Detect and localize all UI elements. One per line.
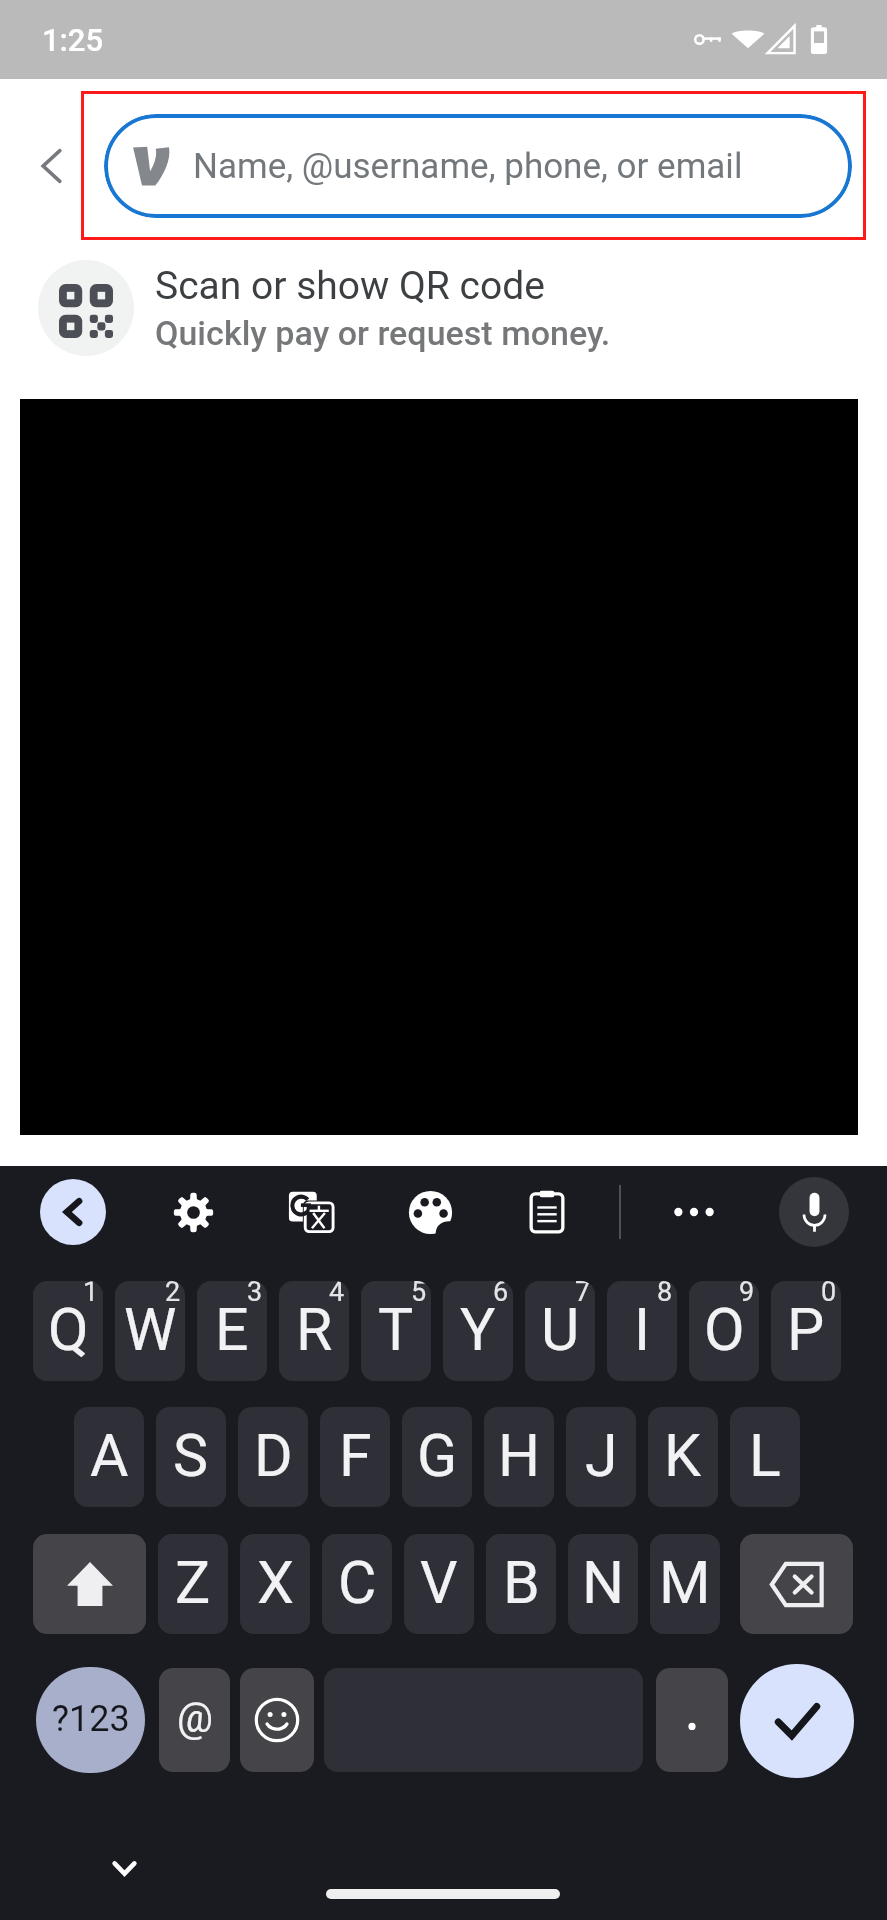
button[interactable]: Clipboard <box>517 1182 577 1242</box>
staticText: 6 <box>493 1281 509 1308</box>
staticText: V <box>420 1548 458 1617</box>
staticText: Q <box>48 1295 89 1364</box>
button[interactable]: M <box>650 1534 720 1634</box>
button[interactable]: More options <box>664 1182 724 1242</box>
staticText: N <box>582 1548 625 1617</box>
staticText: 7 <box>575 1281 591 1308</box>
button[interactable]: Y <box>443 1281 513 1381</box>
button[interactable]: Voice input <box>779 1177 849 1247</box>
staticText: 8 <box>657 1281 673 1308</box>
button[interactable]: Back <box>17 132 85 200</box>
button[interactable]: Hide keyboard <box>98 1842 150 1894</box>
staticText: M <box>659 1548 711 1617</box>
button[interactable]: J <box>566 1407 636 1507</box>
button[interactable]: G <box>402 1407 472 1507</box>
staticText: B <box>503 1548 540 1617</box>
button[interactable]: E <box>197 1281 267 1381</box>
staticText: Y <box>460 1295 496 1364</box>
button[interactable]: D <box>238 1407 308 1507</box>
button[interactable]: K <box>648 1407 718 1507</box>
staticText: T <box>378 1295 414 1364</box>
staticText: C <box>338 1548 377 1617</box>
button[interactable]: Done <box>740 1664 854 1778</box>
staticText: 5 <box>411 1281 427 1308</box>
staticText: Quickly pay or request money. <box>155 313 611 353</box>
staticText: H <box>498 1421 541 1490</box>
staticText: E <box>215 1295 249 1364</box>
button[interactable]: R <box>279 1281 349 1381</box>
staticText: F <box>339 1421 372 1490</box>
button[interactable]: V <box>404 1534 474 1634</box>
staticText: ?123 <box>52 1698 130 1740</box>
staticText: I <box>634 1295 651 1364</box>
staticText: 9 <box>739 1281 755 1308</box>
button[interactable]: Q <box>33 1281 103 1381</box>
button[interactable]: Settings <box>163 1182 223 1242</box>
button[interactable]: Scan or show QR code <box>0 246 887 370</box>
button[interactable]: I <box>607 1281 677 1381</box>
button[interactable]: B <box>486 1534 556 1634</box>
staticText: R <box>296 1295 333 1364</box>
button[interactable]: Theme <box>400 1182 460 1242</box>
button[interactable]: Previous <box>40 1179 106 1245</box>
button[interactable]: Translate <box>281 1182 341 1242</box>
staticText: 3 <box>247 1281 263 1308</box>
button[interactable]: P <box>771 1281 841 1381</box>
staticText: U <box>541 1295 580 1364</box>
button[interactable]: ?123 <box>36 1667 145 1773</box>
button[interactable]: @ <box>159 1668 230 1772</box>
staticText: A <box>90 1421 129 1490</box>
button[interactable]: Shift <box>33 1534 146 1634</box>
button[interactable]: Emoji <box>240 1668 314 1772</box>
staticText: @ <box>177 1695 213 1742</box>
staticText: 0 <box>821 1281 837 1308</box>
button[interactable]: Name, @username, phone, or email <box>104 114 852 218</box>
button[interactable]: C <box>322 1534 392 1634</box>
staticText: O <box>704 1295 745 1364</box>
staticText: D <box>254 1421 293 1490</box>
staticText: G <box>417 1421 458 1490</box>
button[interactable]: X <box>240 1534 310 1634</box>
staticText: K <box>664 1421 702 1490</box>
staticText: P <box>787 1295 825 1364</box>
staticText: Scan or show QR code <box>155 263 545 309</box>
button[interactable]: Delete <box>740 1534 853 1634</box>
button[interactable]: O <box>689 1281 759 1381</box>
staticText: Name, @username, phone, or email <box>193 146 743 187</box>
button[interactable] <box>656 1668 728 1772</box>
button[interactable]: H <box>484 1407 554 1507</box>
button[interactable]: N <box>568 1534 638 1634</box>
button[interactable]: U <box>525 1281 595 1381</box>
button[interactable]: A <box>74 1407 144 1507</box>
button[interactable]: T <box>361 1281 431 1381</box>
button[interactable]: W <box>115 1281 185 1381</box>
button[interactable]: Z <box>158 1534 228 1634</box>
staticText: 2 <box>165 1281 181 1308</box>
button[interactable]: F <box>320 1407 390 1507</box>
staticText: 1:25 <box>42 22 104 58</box>
staticText: Z <box>175 1548 211 1617</box>
staticText: W <box>124 1295 177 1364</box>
button[interactable]: S <box>156 1407 226 1507</box>
staticText: L <box>749 1421 781 1490</box>
staticText: J <box>585 1421 618 1490</box>
staticText: X <box>257 1548 294 1617</box>
staticText: S <box>173 1421 209 1490</box>
staticText: 1 <box>83 1281 99 1308</box>
button[interactable]: L <box>730 1407 800 1507</box>
staticText: 4 <box>329 1281 345 1308</box>
